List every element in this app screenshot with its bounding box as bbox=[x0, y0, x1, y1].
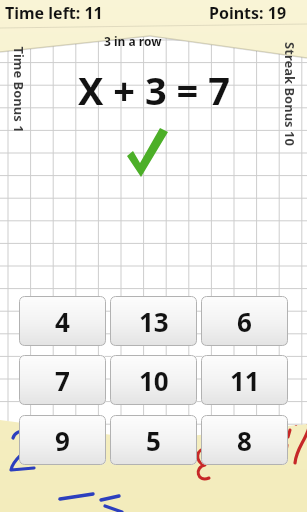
button[interactable]: 13 bbox=[110, 296, 197, 346]
button[interactable]: 9 bbox=[19, 415, 106, 465]
staticText: 11 bbox=[230, 363, 260, 398]
button[interactable]: 8 bbox=[201, 415, 288, 465]
staticText: 5 bbox=[146, 423, 161, 458]
staticText: 13 bbox=[139, 304, 169, 339]
staticText: Time left: 11 bbox=[5, 2, 103, 24]
staticText: Points: 19 bbox=[209, 2, 287, 24]
staticText: 7 bbox=[55, 363, 70, 398]
button[interactable]: 6 bbox=[201, 296, 288, 346]
staticText: 6 bbox=[237, 304, 252, 339]
button[interactable]: 11 bbox=[201, 355, 288, 405]
button[interactable]: 5 bbox=[110, 415, 197, 465]
staticText: Time Bonus 1 bbox=[10, 46, 28, 133]
staticText: 8 bbox=[237, 423, 252, 458]
staticText: 9 bbox=[55, 423, 70, 458]
staticText: X + 3 = 7 bbox=[78, 64, 230, 116]
button[interactable]: 7 bbox=[19, 355, 106, 405]
button[interactable]: 4 bbox=[19, 296, 106, 346]
staticText: 4 bbox=[55, 304, 70, 339]
button[interactable]: 10 bbox=[110, 355, 197, 405]
staticText: 10 bbox=[139, 363, 169, 398]
staticText: Streak Bonus 10 bbox=[281, 42, 299, 146]
staticText: 3 in a row bbox=[104, 33, 162, 49]
